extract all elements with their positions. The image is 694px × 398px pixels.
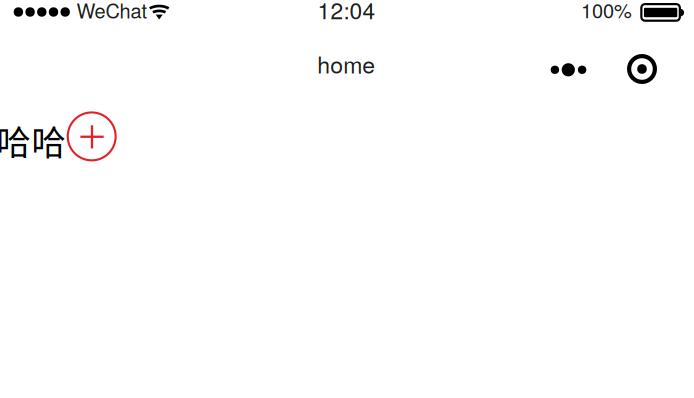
staticText: 12:04 — [317, 0, 375, 26]
button[interactable]: Add — [66, 111, 117, 161]
staticText: WeChat — [76, 0, 147, 24]
staticText: 哈 — [32, 115, 66, 165]
button[interactable]: More — [540, 48, 596, 92]
button[interactable]: Discover — [620, 47, 664, 91]
staticText: 100% — [581, 0, 632, 24]
staticText: home — [317, 47, 375, 80]
staticText: 哈 — [0, 115, 31, 165]
